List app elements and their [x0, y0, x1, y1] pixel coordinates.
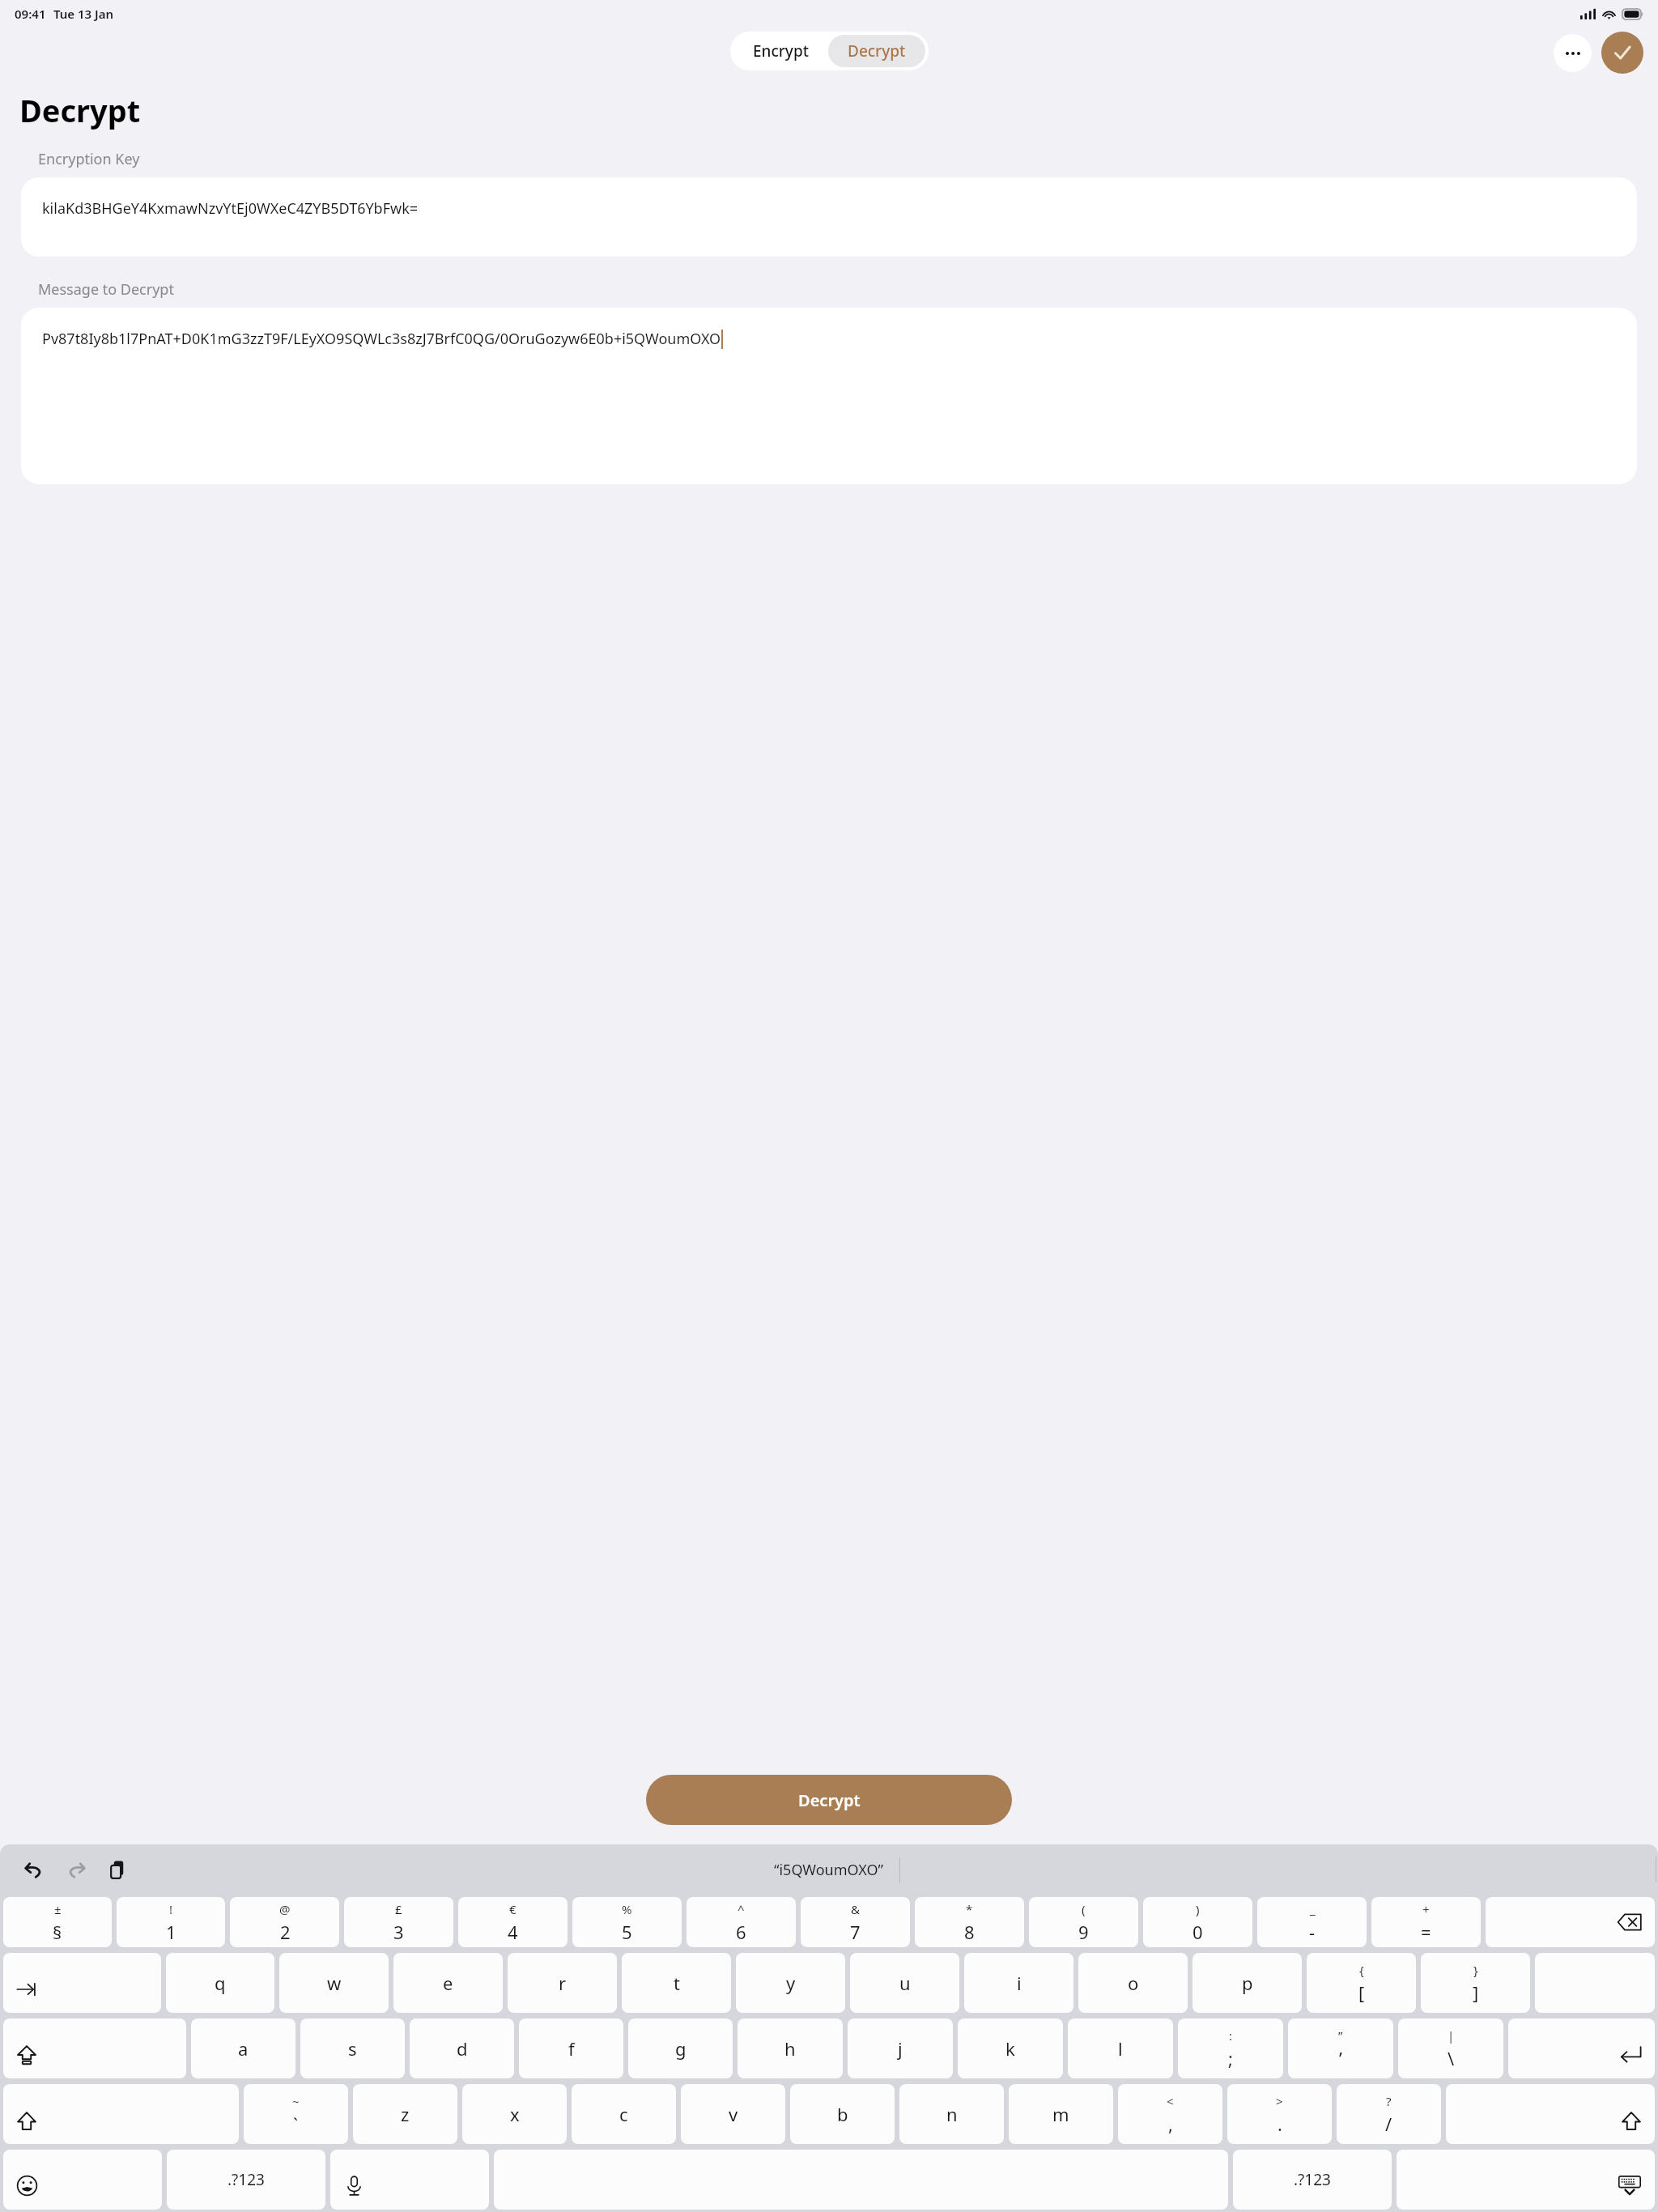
button[interactable]: * — [915, 1897, 1024, 1947]
button[interactable]: y — [736, 1953, 845, 2013]
button[interactable]: & — [801, 1897, 910, 1947]
button[interactable]: Backspace — [1486, 1897, 1655, 1947]
button[interactable]: Undo — [16, 1852, 52, 1887]
button[interactable]: s — [300, 2018, 405, 2078]
button[interactable]: m — [1009, 2084, 1113, 2144]
button[interactable]: v — [681, 2084, 785, 2144]
button[interactable]: Decrypt — [646, 1775, 1012, 1825]
button[interactable]: l — [1068, 2018, 1173, 2078]
button[interactable]: b — [790, 2084, 895, 2144]
button[interactable]: £ — [344, 1897, 453, 1947]
button[interactable]: r — [508, 1953, 617, 2013]
button[interactable]: Return — [1508, 2018, 1655, 2078]
staticText: o — [1128, 1971, 1139, 1995]
button[interactable]: i — [964, 1953, 1073, 2013]
button[interactable]: e — [393, 1953, 503, 2013]
button[interactable]: Pv87t8Iy8b1l7PnAT+D0K1mG3zzT9F/LEyXO9SQW… — [21, 308, 1637, 484]
staticText: ’ — [1339, 2046, 1342, 2070]
staticText: 1 — [166, 1920, 176, 1944]
button[interactable]: ( — [1029, 1897, 1138, 1947]
button[interactable]: + — [1371, 1897, 1481, 1947]
button[interactable]: p — [1192, 1953, 1302, 2013]
staticText: - — [1309, 1920, 1316, 1944]
button[interactable]: < — [1118, 2084, 1222, 2144]
button[interactable]: { — [1307, 1953, 1416, 2013]
button[interactable]: .?123 — [167, 2150, 325, 2210]
button[interactable]: Caps lock — [3, 2018, 186, 2078]
staticText: £ — [395, 1901, 402, 1917]
button[interactable]: € — [458, 1897, 568, 1947]
button[interactable]: Shift — [1446, 2084, 1655, 2144]
button[interactable]: q — [166, 1953, 274, 2013]
button[interactable]: Tab — [3, 1953, 161, 2013]
button[interactable]: : — [1178, 2018, 1283, 2078]
staticText: g — [675, 2036, 687, 2061]
button[interactable]: Shift — [3, 2084, 239, 2144]
button[interactable]: % — [572, 1897, 682, 1947]
button[interactable]: Hide keyboard — [1397, 2150, 1655, 2210]
button[interactable]: > — [1227, 2084, 1332, 2144]
button[interactable]: ? — [1337, 2084, 1441, 2144]
button[interactable]: j — [848, 2018, 953, 2078]
staticText: r — [559, 1971, 567, 1995]
staticText: Message to Decrypt — [38, 279, 174, 300]
button[interactable]: o — [1078, 1953, 1188, 2013]
staticText: : — [1229, 2027, 1233, 2044]
staticText: kilaKd3BHGeY4KxmawNzvYtEj0WXeC4ZYB5DT6Yb… — [42, 198, 419, 219]
staticText: z — [401, 2102, 410, 2126]
button[interactable]: c — [572, 2084, 676, 2144]
button[interactable]: | — [1398, 2018, 1503, 2078]
button[interactable]: .?123 — [1233, 2150, 1392, 2210]
button[interactable]: ) — [1143, 1897, 1252, 1947]
button[interactable]: More options — [1554, 34, 1592, 72]
button[interactable]: Done — [1601, 32, 1643, 74]
button[interactable]: Emoji — [3, 2150, 162, 2210]
button[interactable]: ^ — [687, 1897, 796, 1947]
button[interactable]: Decrypt — [828, 35, 925, 67]
button[interactable]: ” — [1288, 2018, 1393, 2078]
staticText: > — [1276, 2093, 1283, 2109]
button[interactable]: a — [191, 2018, 295, 2078]
staticText: ( — [1082, 1901, 1086, 1917]
staticText: ? — [1386, 2093, 1392, 2109]
button[interactable]: k — [958, 2018, 1063, 2078]
button[interactable]: u — [850, 1953, 959, 2013]
button[interactable]: @ — [230, 1897, 339, 1947]
button[interactable]: d — [410, 2018, 514, 2078]
staticText: } — [1473, 1962, 1478, 1978]
staticText: y — [786, 1971, 796, 1995]
button[interactable]: _ — [1257, 1897, 1367, 1947]
staticText: b — [837, 2102, 848, 2126]
staticText: ] — [1473, 1980, 1479, 2005]
button[interactable]: Redo — [58, 1852, 94, 1887]
button[interactable]: w — [279, 1953, 389, 2013]
button[interactable]: ~ — [244, 2084, 348, 2144]
button[interactable]: Encrypt — [733, 35, 828, 67]
staticText: Encryption Key — [38, 149, 140, 169]
staticText: _ — [1310, 1901, 1316, 1917]
button[interactable]: } — [1421, 1953, 1530, 2013]
staticText: % — [622, 1901, 632, 1917]
button[interactable]: t — [622, 1953, 731, 2013]
button[interactable]: n — [899, 2084, 1004, 2144]
button[interactable]: z — [353, 2084, 457, 2144]
button[interactable]: h — [738, 2018, 843, 2078]
button[interactable]: ! — [117, 1897, 225, 1947]
button[interactable]: Paste — [100, 1852, 136, 1887]
button[interactable]: Dictation — [330, 2150, 489, 2210]
button[interactable]: g — [628, 2018, 733, 2078]
staticText: 8 — [964, 1920, 975, 1944]
button[interactable]: ± — [3, 1897, 112, 1947]
staticText: q — [215, 1971, 226, 1995]
staticText: * — [966, 1901, 973, 1917]
staticText: h — [784, 2036, 796, 2061]
button[interactable]: f — [519, 2018, 623, 2078]
button[interactable]: x — [462, 2084, 567, 2144]
staticText: s — [348, 2036, 357, 2061]
button[interactable]: kilaKd3BHGeY4KxmawNzvYtEj0WXeC4ZYB5DT6Yb… — [21, 177, 1637, 257]
button[interactable]: “i5QWoumOXO” — [758, 1855, 899, 1885]
staticText: v — [729, 2102, 738, 2126]
staticText: ` — [293, 2112, 299, 2136]
